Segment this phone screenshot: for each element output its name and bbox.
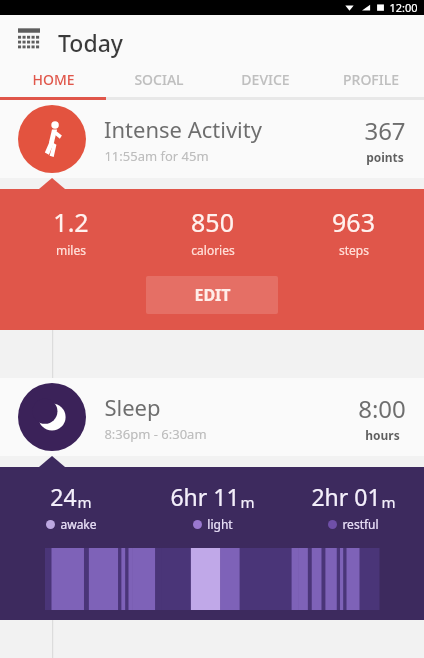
staticText: 1.2 [53, 205, 89, 239]
staticText: PROFILE [343, 70, 399, 89]
staticText: 12:00 [389, 0, 418, 15]
staticText: 24 [50, 481, 77, 512]
staticText: calories [191, 242, 235, 258]
staticText: Today [58, 27, 123, 58]
staticText: HOME [32, 70, 75, 89]
button[interactable]: HOME [0, 62, 106, 97]
other: Activity [18, 105, 86, 173]
staticText: light [207, 516, 233, 532]
staticText: 963 [332, 205, 375, 239]
staticText: 2hr 01 [311, 481, 381, 512]
staticText: Intense Activity [104, 114, 262, 144]
staticText: 367 [364, 114, 406, 147]
staticText: 8:36pm - 6:30am [104, 425, 207, 443]
staticText: miles [56, 242, 86, 258]
staticText: awake [60, 516, 97, 532]
button[interactable]: Sleep [0, 378, 424, 456]
staticText: DEVICE [241, 70, 290, 89]
staticText: SOCIAL [134, 70, 184, 89]
staticText: 6hr 11 [170, 481, 240, 512]
button[interactable]: EDIT [146, 276, 278, 314]
staticText: points [366, 149, 404, 165]
staticText: steps [339, 242, 369, 258]
button[interactable]: Activity [0, 100, 424, 178]
staticText: 8:00 [358, 392, 406, 425]
button[interactable]: SOCIAL [106, 62, 212, 97]
staticText: m [77, 492, 92, 512]
staticText: EDIT [194, 284, 231, 306]
staticText: 850 [191, 205, 234, 239]
staticText: 11:55am for 45m [104, 147, 209, 165]
staticText: hours [365, 427, 400, 443]
staticText: m [381, 492, 396, 512]
button[interactable]: PROFILE [318, 62, 424, 97]
other: Sleep [18, 383, 86, 451]
button[interactable]: DEVICE [212, 62, 318, 97]
staticText: restful [342, 516, 379, 532]
staticText: m [240, 492, 255, 512]
staticText: Sleep [104, 392, 161, 422]
